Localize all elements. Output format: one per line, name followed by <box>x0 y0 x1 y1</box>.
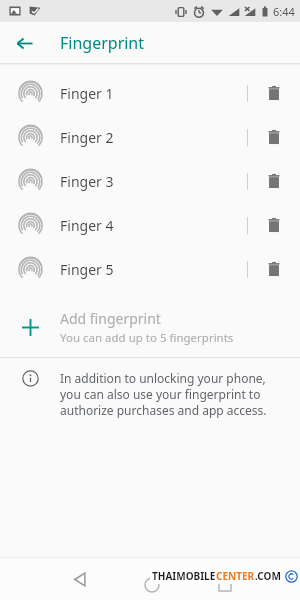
button[interactable]: Finger 2 <box>0 115 300 159</box>
button[interactable]: Back <box>8 27 40 59</box>
staticText: In addition to unlocking your phone, you… <box>60 370 284 418</box>
button[interactable]: Delete Finger 4 <box>248 203 300 247</box>
button[interactable]: Finger 4 <box>0 203 300 247</box>
button[interactable]: Add fingerprint <box>0 304 300 351</box>
staticText: Finger 4 <box>60 216 114 235</box>
button[interactable]: Delete Finger 3 <box>248 159 300 203</box>
staticText: Fingerprint <box>60 32 145 54</box>
staticText: You can add up to 5 fingerprints <box>60 330 234 346</box>
staticText: Finger 2 <box>60 128 114 147</box>
button[interactable]: Finger 5 <box>0 247 300 291</box>
staticText: .COM <box>255 569 281 583</box>
staticText: Finger 1 <box>60 84 114 103</box>
staticText: Finger 3 <box>60 172 114 191</box>
button[interactable]: Finger 1 <box>0 71 300 115</box>
button[interactable]: Recent apps <box>210 570 240 600</box>
staticText: THAIMOBILE <box>152 569 216 583</box>
staticText: Finger 5 <box>60 260 114 279</box>
button[interactable]: Home <box>137 570 167 600</box>
staticText: Add fingerprint <box>60 309 161 328</box>
button[interactable]: Back <box>62 562 96 596</box>
button[interactable]: Delete Finger 1 <box>248 71 300 115</box>
button[interactable]: Finger 3 <box>0 159 300 203</box>
button[interactable]: Delete Finger 2 <box>248 115 300 159</box>
staticText: CENTER <box>216 569 255 583</box>
staticText: 6:44 <box>273 4 295 19</box>
button[interactable]: Delete Finger 5 <box>248 247 300 291</box>
